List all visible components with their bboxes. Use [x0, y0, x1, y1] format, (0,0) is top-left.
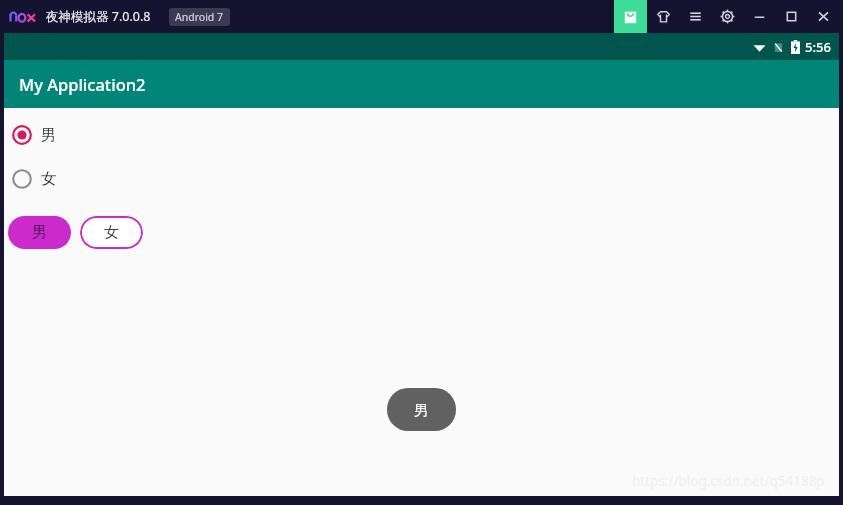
button[interactable]: 男 — [8, 216, 71, 249]
button[interactable]: Close — [807, 0, 839, 33]
staticText: My Application2 — [19, 73, 146, 95]
staticText: 男 — [32, 223, 47, 242]
staticText: 女 — [41, 169, 57, 189]
button[interactable]: Maximize — [775, 0, 807, 33]
staticText: https://blog.csdn.net/q54188p — [632, 472, 825, 490]
button[interactable]: App store — [614, 0, 647, 33]
button[interactable]: 男 — [387, 388, 456, 431]
staticText: 女 — [104, 223, 119, 242]
button[interactable]: Minimize — [743, 0, 775, 33]
button[interactable]: 女 — [80, 216, 143, 249]
button[interactable]: Menu — [679, 0, 711, 33]
staticText: 夜神模拟器 7.0.0.8 — [46, 8, 151, 25]
staticText: 5:56 — [805, 38, 831, 56]
button[interactable]: 男 — [12, 120, 57, 150]
button[interactable]: 女 — [12, 164, 57, 194]
button[interactable]: Settings — [711, 0, 743, 33]
staticText: 男 — [41, 125, 57, 145]
staticText: 男 — [414, 401, 429, 419]
button[interactable]: Shirt — [647, 0, 679, 33]
staticText: Android 7 — [175, 10, 224, 24]
